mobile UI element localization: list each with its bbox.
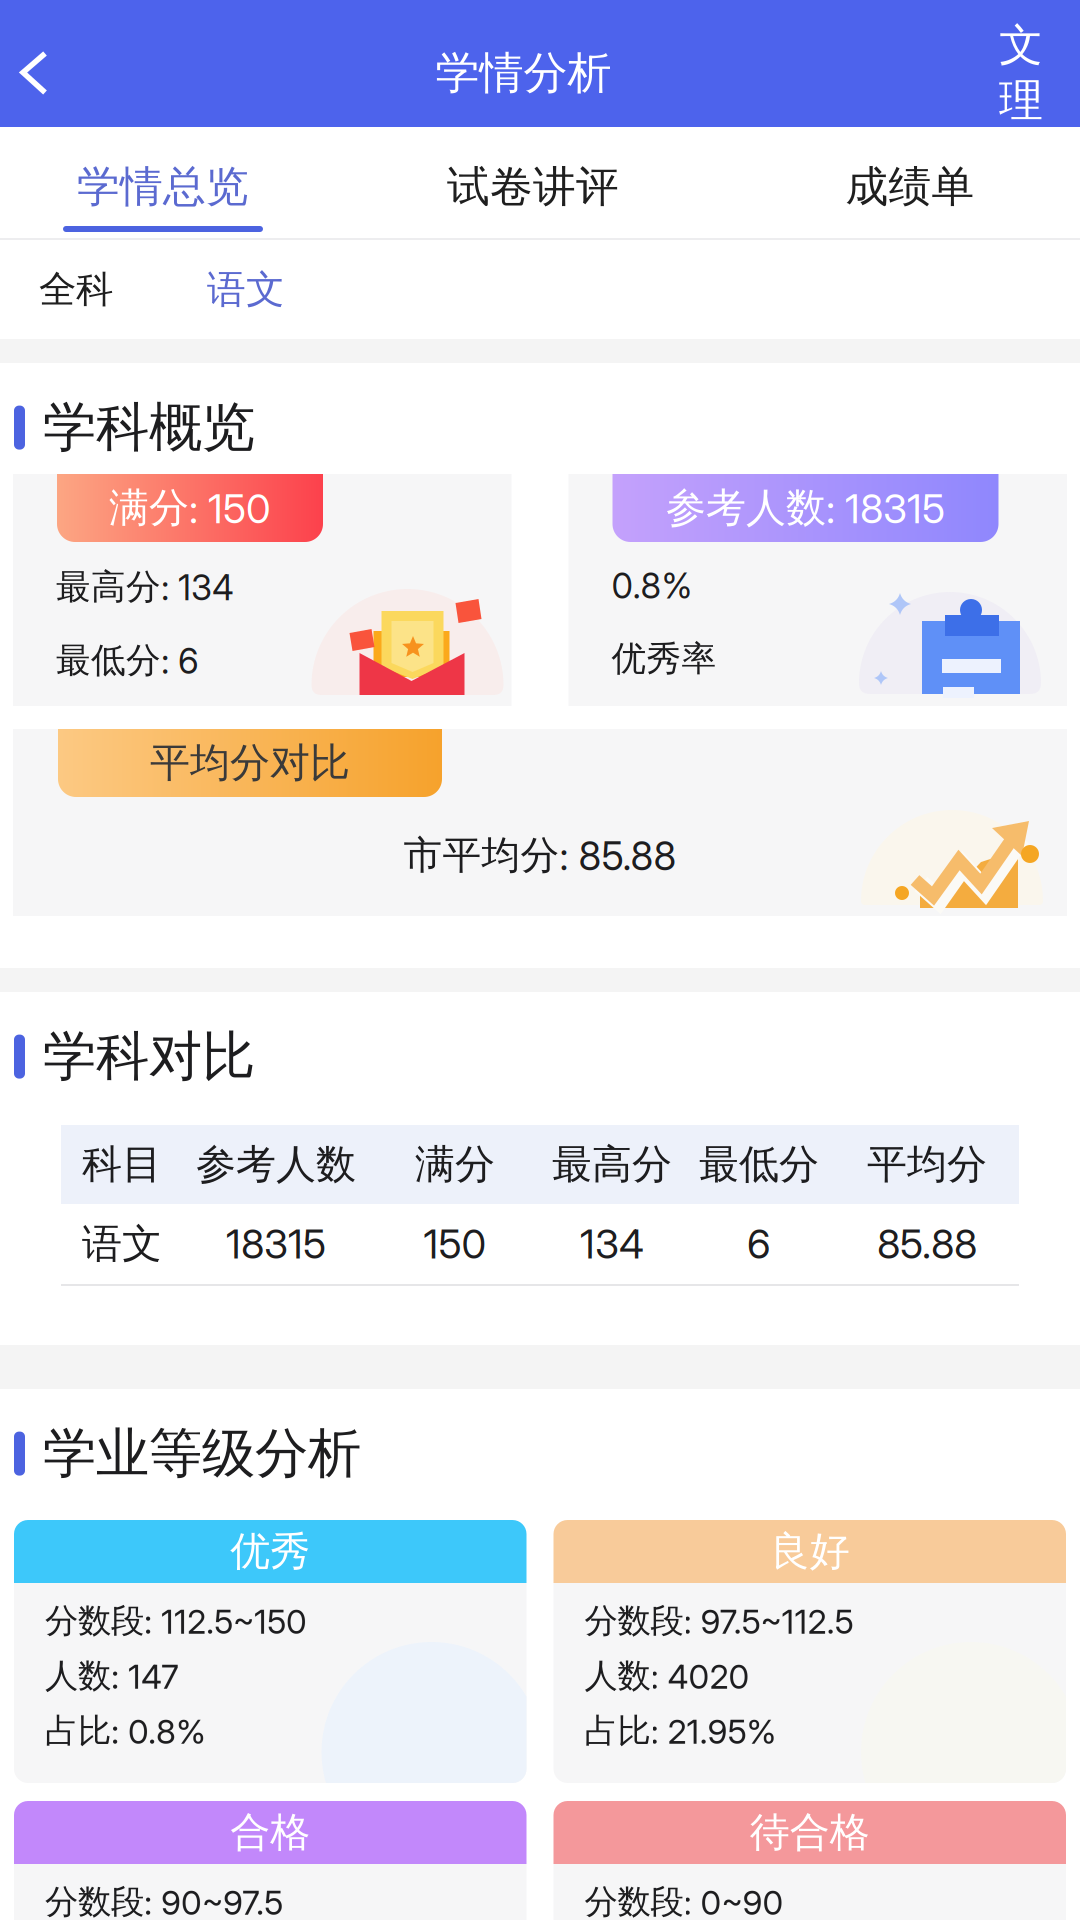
staticText: 待合格 — [750, 1807, 870, 1858]
staticText: 分数段: 97.5~112.5 — [584, 1600, 853, 1642]
staticText: 合格 — [230, 1807, 310, 1858]
staticText: 分数段: 0~90 — [584, 1881, 783, 1920]
staticText: 6 — [747, 1220, 771, 1268]
button[interactable]: 文理 — [999, 23, 1080, 123]
staticText: 最低分 — [699, 1139, 819, 1190]
staticText: 平均分 — [867, 1139, 987, 1190]
staticText: 0.8% — [611, 565, 692, 607]
button[interactable]: 试卷讲评 — [326, 127, 740, 238]
staticText: 成绩单 — [845, 160, 974, 214]
button[interactable]: 全科 — [0, 240, 152, 339]
staticText: 占比: 21.95% — [584, 1710, 776, 1752]
staticText: 全科 — [39, 266, 113, 313]
staticText: 优秀 — [230, 1526, 310, 1577]
staticText: 最高分 — [552, 1139, 672, 1190]
staticText: 人数: 4020 — [584, 1655, 749, 1697]
staticText: 优秀率 — [611, 637, 716, 681]
staticText: 134 — [580, 1220, 644, 1268]
staticText: 良好 — [770, 1526, 850, 1577]
staticText: 18315 — [226, 1220, 326, 1268]
staticText: 参考人数 — [196, 1139, 356, 1190]
staticText: 语文 — [82, 1219, 162, 1269]
staticText: 人数: 147 — [45, 1655, 179, 1697]
staticText: 学业等级分析 — [43, 1420, 361, 1487]
staticText: 市平均分: 85.88 — [403, 831, 676, 880]
button[interactable]: 返回 — [0, 23, 48, 123]
staticText: 学科对比 — [43, 1023, 255, 1090]
staticText: 满分 — [415, 1139, 495, 1190]
button[interactable]: 学情总览 — [0, 127, 326, 238]
staticText: 科目 — [82, 1139, 162, 1190]
staticText: 平均分对比 — [150, 738, 350, 788]
staticText: 满分: 150 — [109, 483, 271, 533]
staticText: 语文 — [207, 265, 285, 314]
staticText: 分数段: 112.5~150 — [45, 1600, 307, 1642]
staticText: 学情总览 — [77, 160, 249, 214]
staticText: 分数段: 90~97.5 — [45, 1881, 283, 1920]
staticText: 占比: 0.8% — [45, 1710, 206, 1752]
staticText: 文理 — [999, 18, 1043, 128]
staticText: 学情分析 — [435, 45, 611, 101]
button[interactable]: 成绩单 — [740, 127, 1080, 238]
staticText: 最低分: 6 — [56, 639, 199, 682]
staticText: 学科概览 — [43, 394, 255, 461]
staticText: 85.88 — [877, 1220, 977, 1268]
staticText: 参考人数: 18315 — [666, 483, 945, 533]
staticText: 试卷讲评 — [447, 160, 619, 214]
staticText: 150 — [423, 1220, 486, 1268]
staticText: 最高分: 134 — [56, 565, 234, 609]
button[interactable]: 语文 — [152, 240, 340, 339]
